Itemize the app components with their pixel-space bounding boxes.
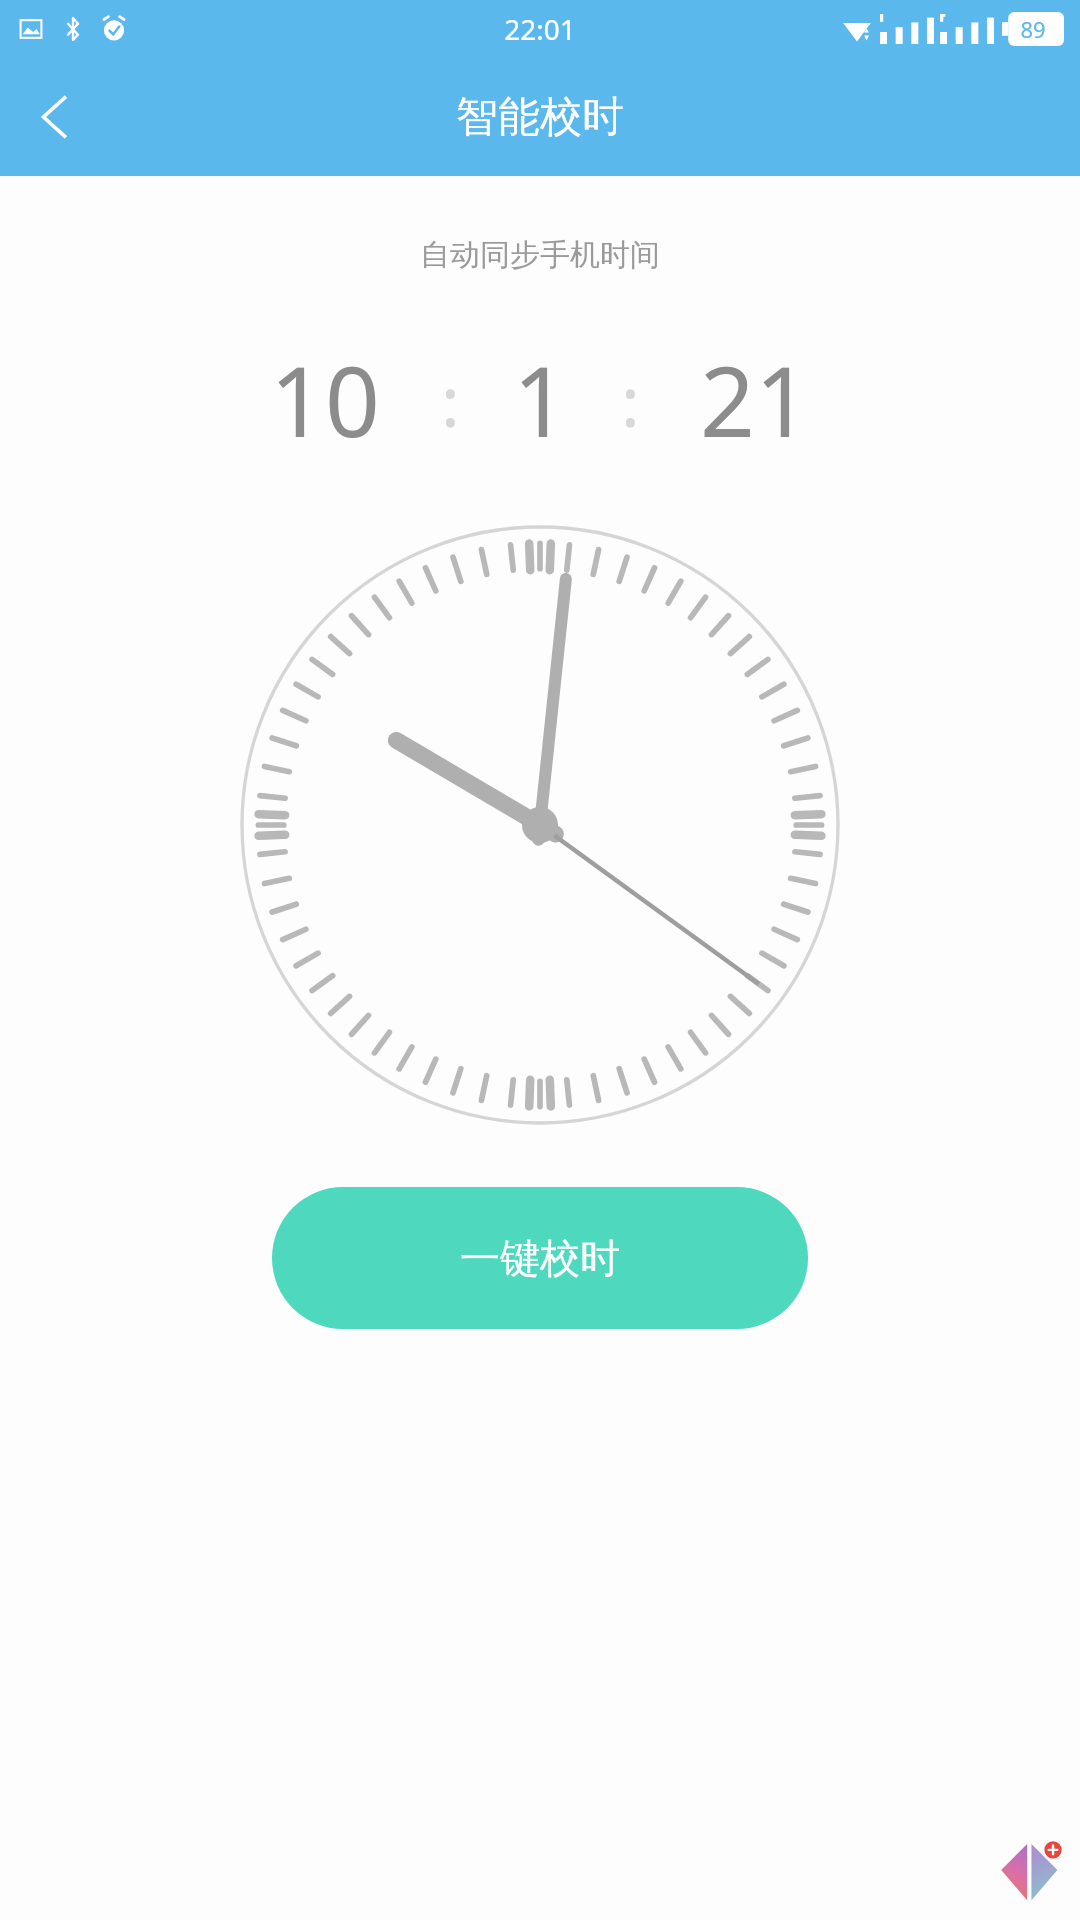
staticText: 22:01 xyxy=(504,10,576,48)
staticText: 10 xyxy=(270,334,380,465)
button[interactable]: 一键校时 xyxy=(272,1187,808,1329)
staticText: 21 xyxy=(700,334,810,465)
staticText: : xyxy=(441,352,460,447)
staticText: 自动同步手机时间 xyxy=(0,236,1080,274)
staticText: 1 xyxy=(513,334,568,465)
button[interactable]: Back xyxy=(0,62,110,172)
staticText: : xyxy=(621,352,640,447)
staticText: 89 xyxy=(1020,14,1046,44)
staticText: 智能校时 xyxy=(456,91,624,144)
staticText: 一键校时 xyxy=(460,1233,620,1283)
